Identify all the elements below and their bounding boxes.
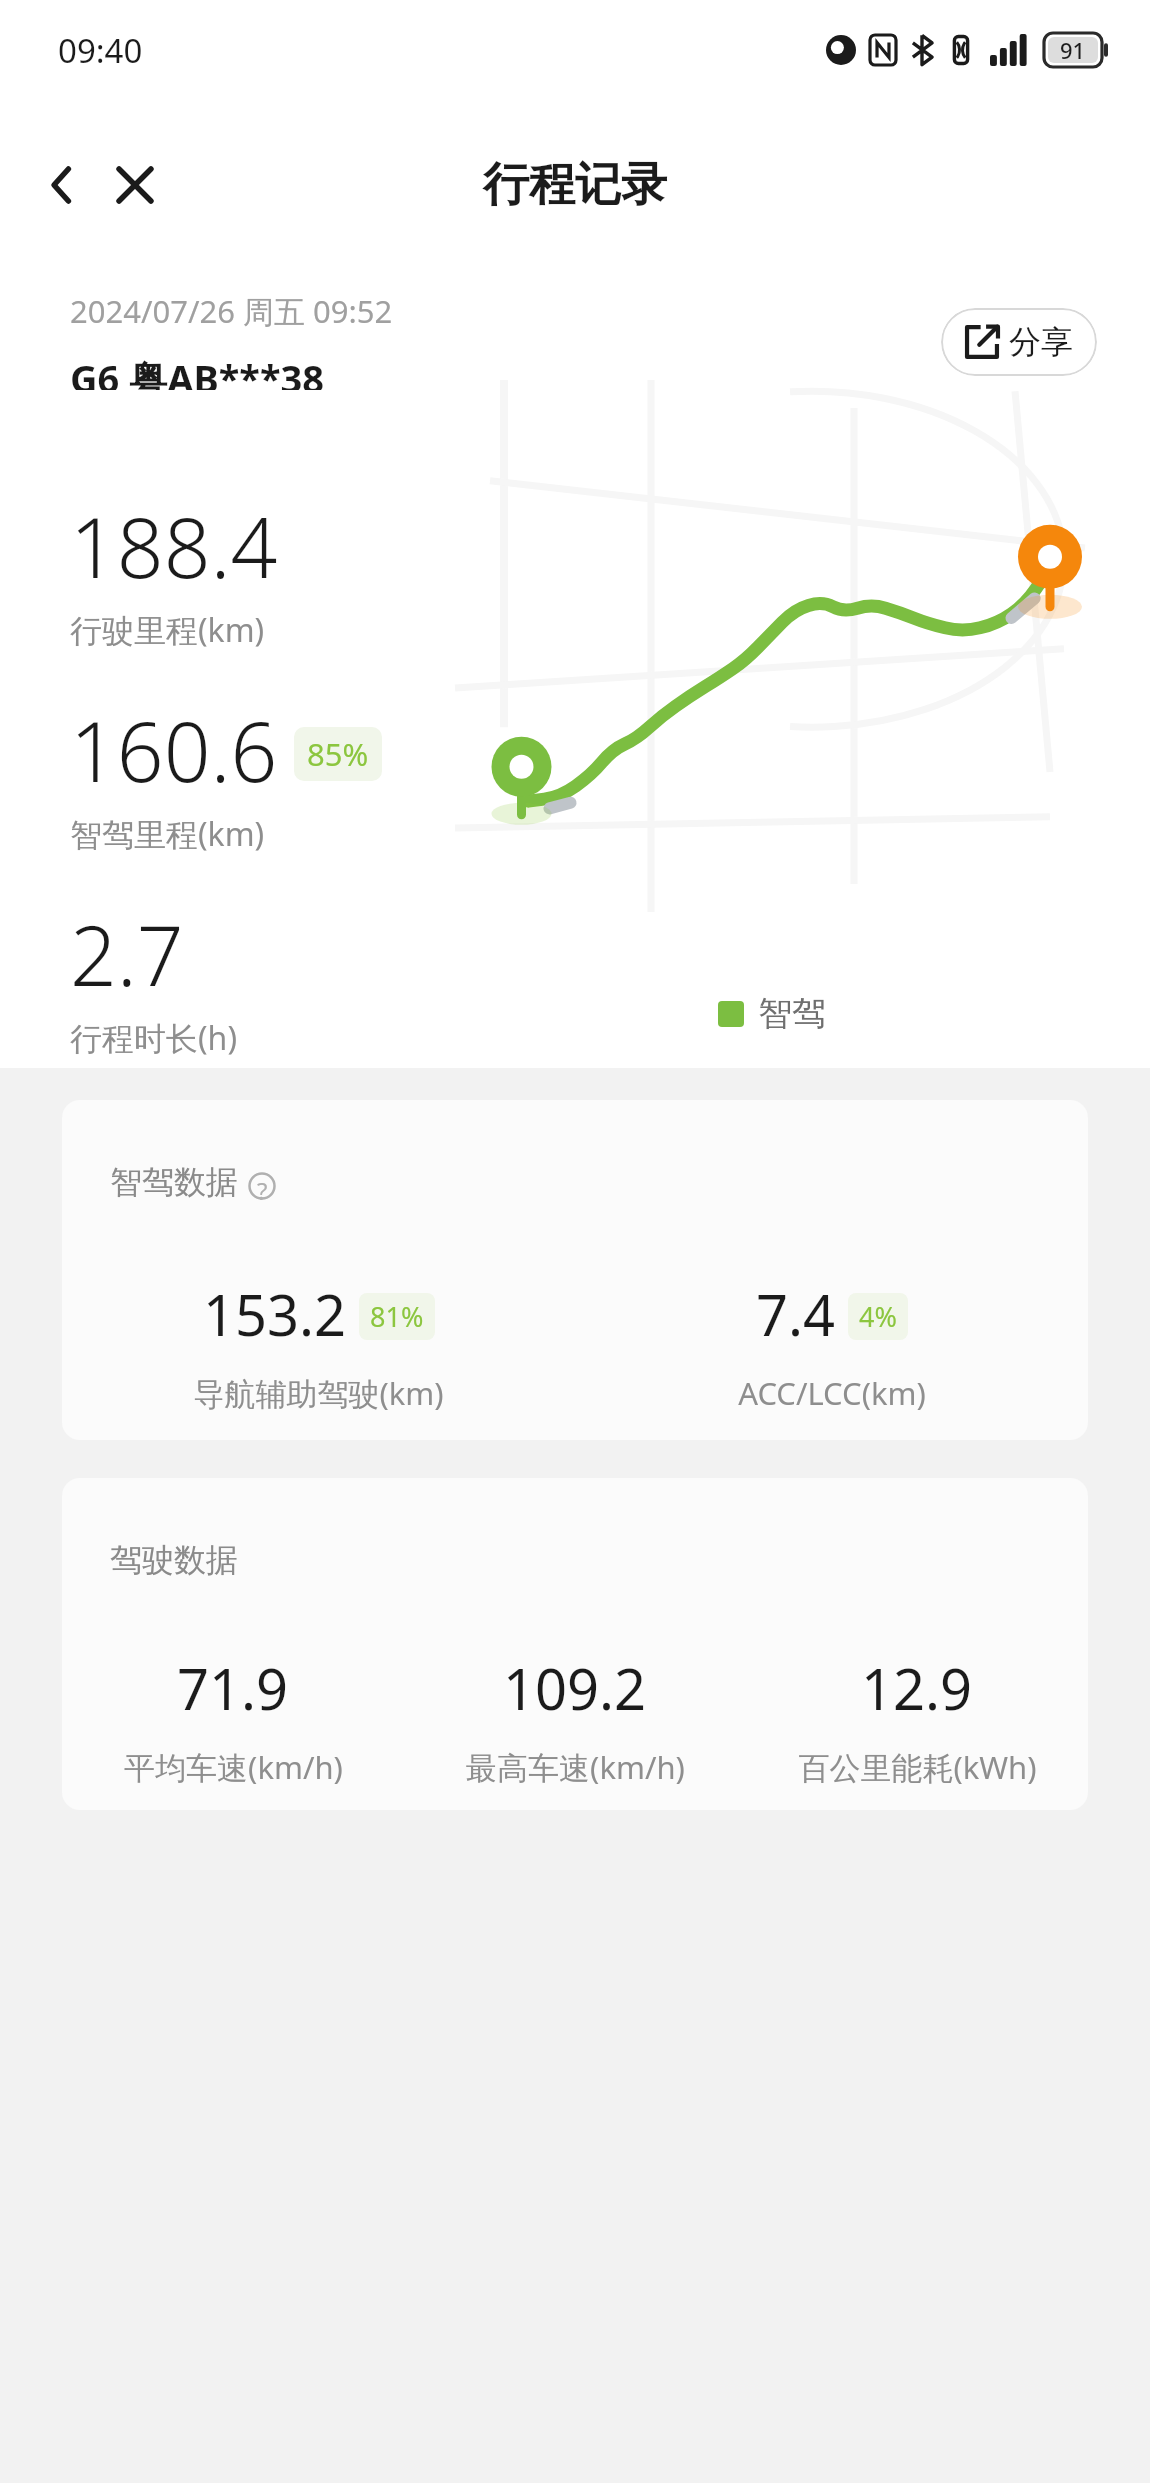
staticText: 2024/07/26 周五 09:52 [70,290,393,332]
staticText: 行驶里程(km) [70,608,265,652]
staticText: 7.4 [756,1276,836,1352]
staticText: 2.7 [70,898,184,1010]
staticText: 分享 [1009,322,1073,362]
staticText: 91 [1060,35,1086,65]
button[interactable]: 153.2 [62,1276,575,1414]
staticText: 109.2 [503,1650,647,1726]
staticText: 驾驶数据 [110,1540,238,1580]
button[interactable]: Close [95,145,175,225]
staticText: ? [257,1174,268,1207]
staticText: 188.4 [70,490,278,602]
button[interactable]: Help [248,1172,276,1200]
staticText: 导航辅助驾驶(km) [193,1372,444,1414]
button[interactable]: 分享 [941,308,1097,376]
button[interactable]: Back [22,145,102,225]
staticText: 09:40 [58,28,143,73]
staticText: 71.9 [177,1650,289,1726]
staticText: 百公里能耗(kWh) [798,1746,1037,1788]
staticText: G6 粤AB***38 [70,352,324,390]
staticText: 行程时长(h) [70,1016,237,1060]
staticText: 智驾数据 [110,1162,238,1202]
button[interactable]: 109.2 [404,1650,746,1788]
staticText: 160.6 [70,694,278,806]
staticText: 153.2 [203,1276,347,1352]
staticText: 行程记录 [483,156,667,214]
staticText: 智驾 [758,992,826,1035]
staticText: 智驾里程(km) [70,812,265,856]
staticText: 4% [859,1298,897,1335]
staticText: ACC/LCC(km) [738,1372,926,1414]
button[interactable]: 7.4 [575,1276,1088,1414]
staticText: 12.9 [861,1650,973,1726]
staticText: 85% [307,733,369,775]
staticText: 平均车速(km/h) [124,1746,343,1788]
staticText: 81% [370,1298,424,1335]
button[interactable]: 71.9 [62,1650,404,1788]
staticText: 最高车速(km/h) [466,1746,685,1788]
button[interactable]: 12.9 [746,1650,1088,1788]
